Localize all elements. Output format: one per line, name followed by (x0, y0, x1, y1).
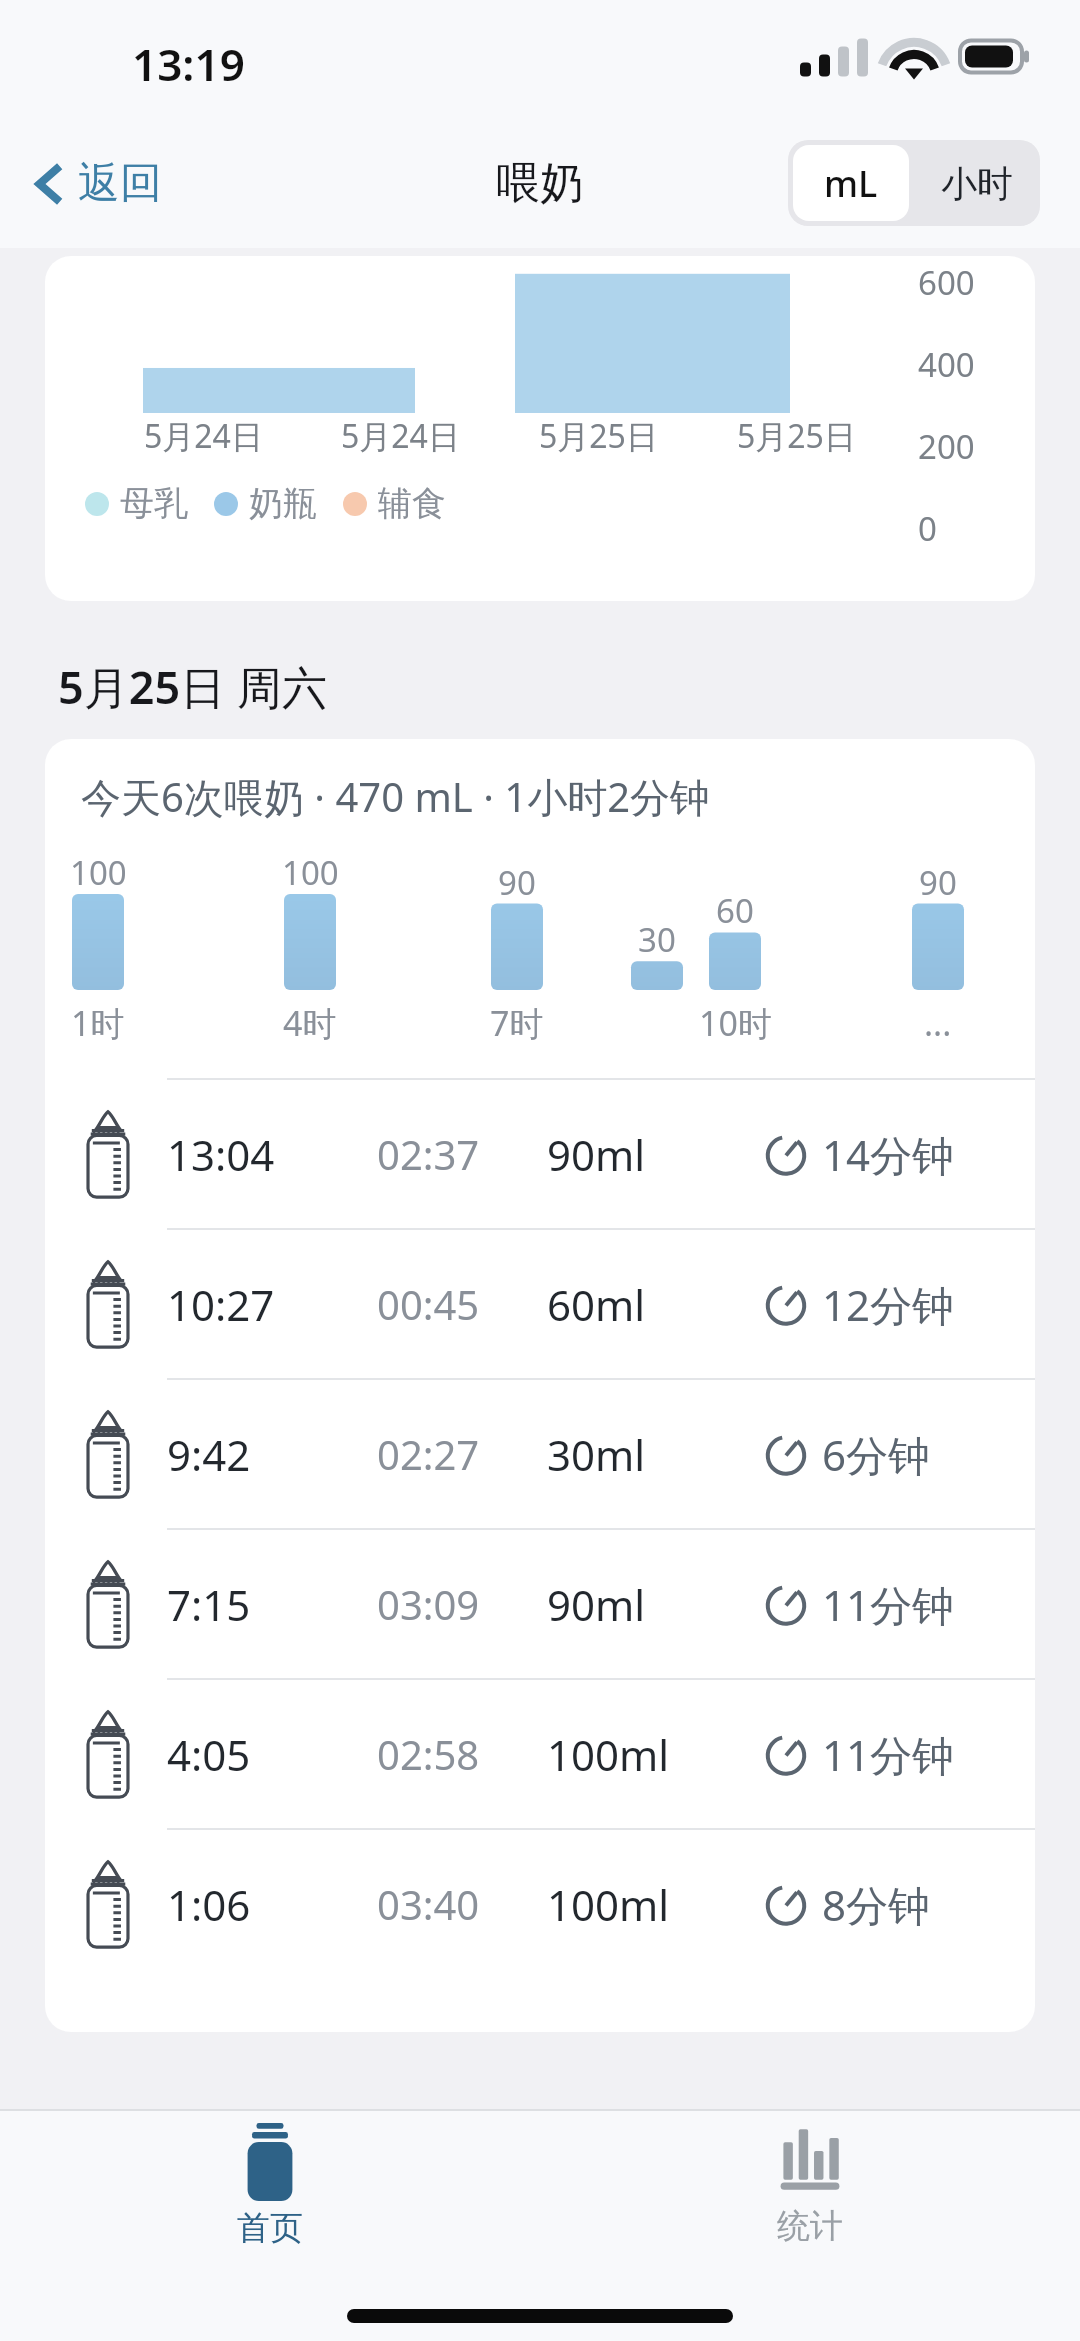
staticText: 1:06 (167, 1876, 251, 1933)
staticText: 90ml (547, 1576, 646, 1633)
other: 时长 (762, 1430, 810, 1478)
staticText: 5月24日 (144, 414, 263, 458)
other: 时长 (762, 1280, 810, 1328)
staticText: 90 (498, 860, 536, 905)
staticText: 100ml (547, 1726, 670, 1783)
staticText: 90ml (547, 1126, 646, 1183)
staticText: 5月25日 (539, 414, 658, 458)
staticText: 奶瓶 (249, 482, 317, 525)
staticText: 9:42 (167, 1426, 251, 1483)
staticText: 母乳 (120, 482, 188, 525)
staticText: ... (924, 1000, 952, 1046)
button[interactable]: 统计 (540, 2111, 1080, 2261)
staticText: 今天6次喂奶 · 470 mL · 1小时2分钟 (81, 769, 711, 824)
staticText: 60 (716, 888, 754, 933)
staticText: 30 (638, 917, 676, 962)
staticText: 统计 (777, 2205, 843, 2247)
staticText: 11分钟 (822, 1576, 955, 1633)
button[interactable]: 奶瓶 (45, 1530, 1035, 1678)
staticText: 首页 (237, 2207, 303, 2249)
staticText: 600 (918, 260, 975, 305)
staticText: 60ml (547, 1276, 646, 1333)
staticText: 4:05 (167, 1726, 251, 1783)
button[interactable]: 奶瓶 (45, 1080, 1035, 1228)
staticText: 400 (918, 342, 975, 387)
staticText: 10:27 (167, 1276, 275, 1333)
staticText: 1时 (71, 1000, 125, 1046)
staticText: 12分钟 (822, 1276, 955, 1333)
staticText: 6分钟 (822, 1426, 931, 1483)
staticText: 13:19 (132, 34, 245, 94)
staticText: 7时 (490, 1000, 544, 1046)
staticText: 11分钟 (822, 1726, 955, 1783)
button[interactable]: 小时 (914, 140, 1040, 226)
staticText: 00:45 (377, 1277, 480, 1331)
staticText: 02:37 (377, 1127, 480, 1181)
staticText: 5月24日 (341, 414, 460, 458)
staticText: 03:09 (377, 1577, 480, 1631)
staticText: 8分钟 (822, 1876, 931, 1933)
staticText: 100 (282, 850, 339, 895)
staticText: 02:27 (377, 1427, 480, 1481)
button[interactable]: 奶瓶 (45, 1230, 1035, 1378)
other: 奶瓶 (81, 1260, 135, 1348)
staticText: 小时 (941, 161, 1013, 206)
staticText: 100ml (547, 1876, 670, 1933)
button[interactable]: 奶瓶 (45, 1380, 1035, 1528)
button[interactable]: 首页 (0, 2111, 540, 2261)
staticText: 喂奶 (496, 156, 584, 211)
other: 时长 (762, 1730, 810, 1778)
staticText: 03:40 (377, 1877, 480, 1931)
staticText: 02:58 (377, 1727, 480, 1781)
staticText: 14分钟 (822, 1126, 955, 1183)
staticText: 0 (918, 506, 937, 551)
other: 奶瓶 (81, 1860, 135, 1948)
button[interactable]: 600 (45, 256, 1035, 601)
other: 奶瓶 (81, 1710, 135, 1798)
other: 时长 (762, 1130, 810, 1178)
other: 时长 (762, 1880, 810, 1928)
staticText: 4时 (283, 1000, 337, 1046)
other: 奶瓶 (81, 1560, 135, 1648)
staticText: mL (824, 159, 878, 208)
other: 奶瓶 (81, 1110, 135, 1198)
staticText: 辅食 (378, 482, 446, 525)
staticText: 200 (918, 424, 975, 469)
staticText: 30ml (547, 1426, 646, 1483)
staticText: 返回 (78, 157, 162, 210)
button[interactable]: 奶瓶 (45, 1830, 1035, 1978)
staticText: 10时 (699, 1000, 772, 1046)
staticText: 90 (919, 860, 957, 905)
staticText: 13:04 (167, 1126, 275, 1183)
staticText: 5月25日 (737, 414, 856, 458)
button[interactable]: 奶瓶 (45, 1680, 1035, 1828)
staticText: 7:15 (167, 1576, 251, 1633)
button[interactable]: mL (793, 145, 909, 221)
other: 奶瓶 (81, 1410, 135, 1498)
button[interactable]: 返回 (18, 149, 172, 218)
staticText: 5月25日 周六 (58, 656, 327, 717)
staticText: 100 (70, 850, 127, 895)
other: 时长 (762, 1580, 810, 1628)
